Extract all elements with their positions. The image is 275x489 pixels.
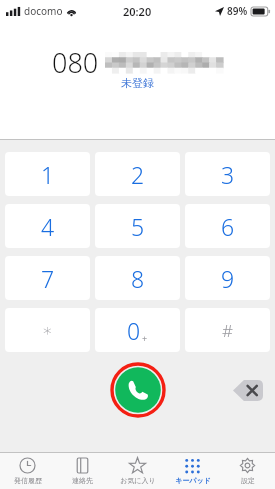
staticText: 1	[41, 159, 55, 190]
staticText: 8	[131, 263, 145, 294]
staticText: 9	[221, 263, 235, 294]
staticText: 20:20	[123, 4, 152, 19]
button[interactable]: ∗	[5, 308, 90, 352]
button[interactable]: 8	[95, 256, 180, 300]
staticText: 設定	[241, 476, 255, 485]
button[interactable]: 5	[95, 204, 180, 248]
button[interactable]: 4	[5, 204, 90, 248]
staticText: 2	[131, 159, 145, 190]
button[interactable]: 6	[185, 204, 270, 248]
button[interactable]: 3	[185, 152, 270, 196]
staticText: +	[142, 332, 148, 344]
button[interactable]: Delete	[233, 380, 263, 401]
button[interactable]: 7	[5, 256, 90, 300]
staticText: 89%	[227, 4, 248, 18]
staticText: キーパッド	[175, 476, 211, 485]
staticText: 0	[127, 315, 141, 346]
button[interactable]: 設定	[220, 453, 275, 489]
button[interactable]: 9	[185, 256, 270, 300]
staticText: 080	[52, 44, 99, 81]
staticText: docomo	[24, 4, 63, 18]
staticText: 5	[131, 211, 145, 242]
button[interactable]: 1	[5, 152, 90, 196]
button[interactable]: 2	[95, 152, 180, 196]
staticText: 発信履歴	[14, 476, 42, 485]
staticText: 7	[41, 263, 55, 294]
button[interactable]: お気に入り	[110, 453, 165, 489]
staticText: 連絡先	[72, 476, 93, 485]
button[interactable]: 0	[95, 308, 180, 352]
button[interactable]: Call	[111, 363, 165, 417]
staticText: #	[222, 319, 233, 342]
staticText: 6	[221, 211, 235, 242]
staticText: お気に入り	[120, 476, 156, 485]
staticText: ∗	[42, 320, 53, 340]
staticText: 3	[221, 159, 235, 190]
button[interactable]: 連絡先	[55, 453, 110, 489]
button[interactable]: 発信履歴	[0, 453, 55, 489]
staticText: 4	[41, 211, 55, 242]
staticText: 未登録	[121, 76, 154, 90]
button[interactable]: #	[185, 308, 270, 352]
button[interactable]: キーパッド	[165, 453, 220, 489]
